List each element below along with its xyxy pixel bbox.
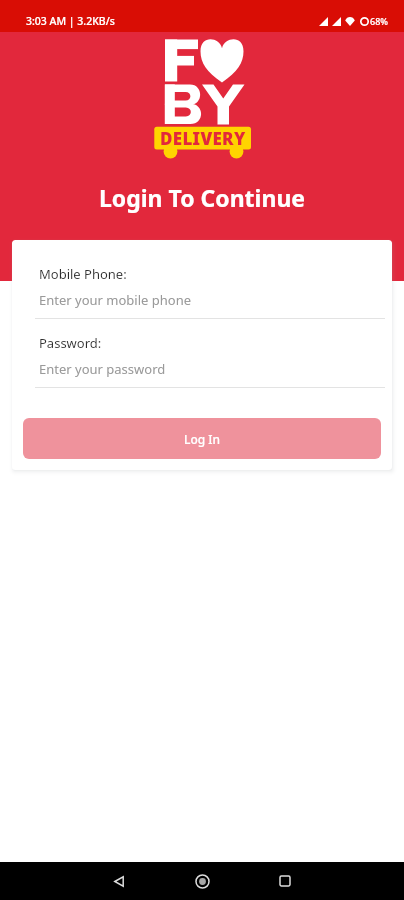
button[interactable]: Home — [184, 863, 220, 899]
staticText: Password: — [39, 334, 102, 352]
button[interactable]: Log In — [23, 418, 381, 459]
staticText: Enter your mobile phone — [39, 291, 192, 309]
staticText: 68% — [370, 15, 388, 27]
staticText: Enter your password — [39, 360, 166, 378]
staticText: Log In — [184, 431, 221, 447]
button[interactable]: Recents — [267, 863, 303, 899]
staticText: Login To Continue — [0, 182, 404, 213]
staticText: DELIVERY — [160, 127, 246, 150]
staticText: Mobile Phone: — [39, 265, 127, 283]
button[interactable]: Back — [101, 863, 137, 899]
staticText: 3:03 AM | 3.2KB/s — [26, 14, 115, 28]
